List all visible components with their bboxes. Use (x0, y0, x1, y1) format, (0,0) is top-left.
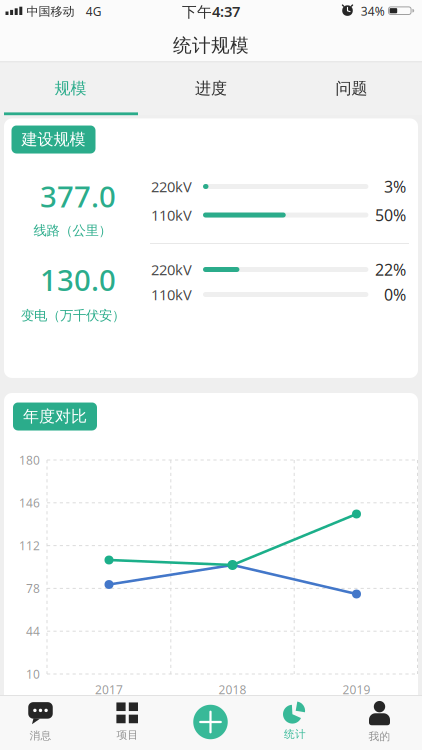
staticText: 2018 (218, 681, 246, 697)
staticText: 78 (26, 580, 40, 596)
staticText: 4G (86, 3, 102, 19)
staticText: 220kV (151, 260, 192, 279)
button[interactable]: 新建 (193, 705, 228, 739)
staticText: 问题 (335, 79, 367, 98)
staticText: 220kV (151, 177, 192, 196)
staticText: 0% (384, 284, 406, 305)
staticText: 110kV (151, 285, 192, 304)
button[interactable]: 我的 (344, 696, 414, 748)
staticText: 线路（公里） (33, 222, 111, 239)
staticText: 进度 (195, 79, 227, 98)
staticText: 变电（万千伏安） (21, 307, 125, 324)
staticText: 112 (19, 538, 40, 553)
staticText: 377.0 (40, 176, 116, 215)
staticText: 年度对比 (23, 407, 87, 426)
button[interactable]: 统计 (260, 696, 330, 748)
button[interactable]: 进度 (141, 62, 281, 114)
staticText: 2017 (95, 681, 123, 697)
staticText: 规模 (54, 79, 86, 98)
button[interactable]: 问题 (281, 62, 421, 114)
button[interactable]: 项目 (92, 696, 162, 748)
staticText: 22% (375, 259, 406, 280)
staticText: 下午4:37 (182, 2, 240, 21)
staticText: 146 (19, 495, 40, 511)
staticText: 中国移动 (26, 4, 74, 19)
staticText: 10 (26, 666, 40, 682)
staticText: 44 (26, 623, 40, 639)
staticText: 130.0 (40, 260, 116, 299)
button[interactable]: 消息 (5, 696, 75, 748)
staticText: 统计规模 (173, 34, 249, 57)
staticText: 50% (375, 204, 406, 226)
staticText: 建设规模 (21, 130, 85, 149)
staticText: 消息 (29, 729, 51, 742)
staticText: 2019 (342, 681, 370, 697)
staticText: 180 (19, 452, 40, 468)
staticText: 我的 (368, 730, 390, 743)
staticText: 34% (361, 3, 385, 19)
staticText: 项目 (116, 728, 138, 741)
staticText: 110kV (151, 205, 192, 225)
button[interactable]: 规模 (0, 62, 140, 114)
staticText: 统计 (284, 728, 306, 741)
staticText: 3% (384, 176, 406, 197)
